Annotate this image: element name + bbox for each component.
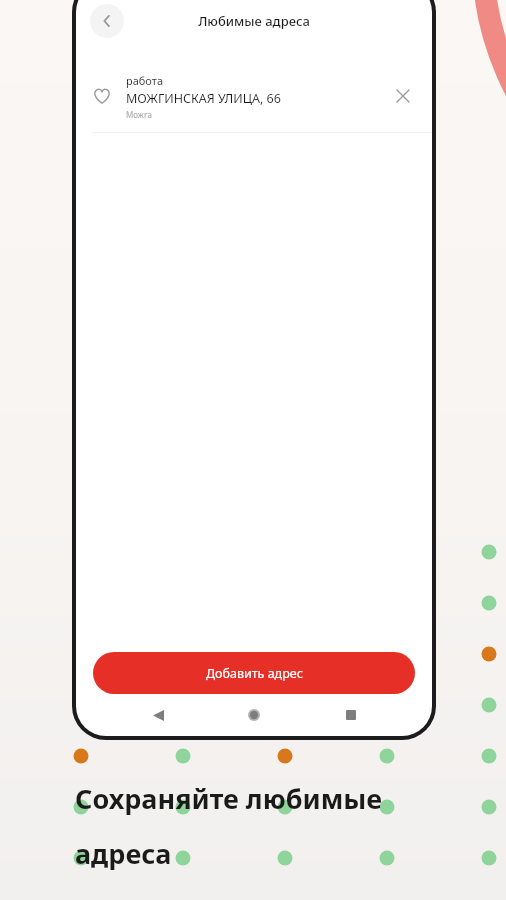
staticText: работа: [126, 73, 164, 88]
button[interactable]: Домой: [239, 700, 269, 730]
button[interactable]: Назад: [90, 4, 124, 38]
staticText: МОЖГИНСКАЯ УЛИЦА, 66: [126, 90, 281, 107]
button[interactable]: работа: [76, 60, 432, 132]
staticText: адреса: [75, 835, 172, 872]
button[interactable]: Назад: [143, 700, 173, 730]
button[interactable]: Удалить адрес: [390, 83, 416, 109]
button[interactable]: Недавние: [336, 700, 366, 730]
staticText: Можга: [126, 109, 152, 120]
staticText: Любимые адреса: [198, 12, 310, 30]
staticText: Добавить адрес: [206, 665, 303, 682]
button[interactable]: Добавить адрес: [93, 652, 415, 694]
staticText: Сохраняйте любимые: [75, 780, 383, 817]
